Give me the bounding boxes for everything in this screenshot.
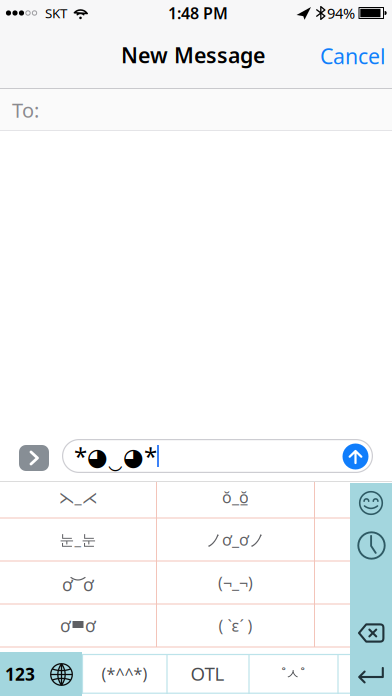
- staticText: ˚ㅅ˚: [281, 664, 304, 683]
- button[interactable]: (¬_¬): [160, 561, 310, 603]
- staticText: 1:48 PM: [168, 2, 228, 24]
- button[interactable]: ⋋_⋌: [3, 476, 153, 518]
- staticText: ơ: [62, 573, 73, 596]
- button[interactable]: ( `ε´ ): [160, 604, 310, 646]
- staticText: 123: [5, 662, 35, 685]
- button[interactable]: Recent: [356, 530, 386, 560]
- button[interactable]: OTL: [167, 654, 247, 692]
- button[interactable]: ơ: [3, 561, 153, 603]
- staticText: New Message: [121, 41, 265, 69]
- button[interactable]: Delete: [358, 623, 385, 643]
- staticText: ノơ_ơノ: [206, 529, 265, 550]
- button[interactable]: ơ: [3, 604, 153, 646]
- staticText: ơ: [60, 614, 71, 637]
- staticText: 눈_눈: [59, 530, 96, 549]
- button[interactable]: 눈_눈: [3, 518, 153, 560]
- button[interactable]: Send: [342, 443, 368, 469]
- staticText: ŏ_ŏ̲: [222, 486, 249, 508]
- button[interactable]: Show app drawer: [19, 445, 49, 471]
- staticText: 94%: [327, 3, 355, 23]
- button[interactable]: ˚ㅅ˚: [253, 654, 333, 692]
- button[interactable]: Next keyboard: [50, 663, 73, 686]
- staticText: (*^^*): [101, 663, 147, 684]
- button[interactable]: ŏ_ŏ̲: [160, 476, 310, 518]
- staticText: *◕‿◕*: [74, 440, 157, 472]
- button[interactable]: Return: [358, 667, 384, 684]
- staticText: ( `ε´ ): [218, 615, 252, 636]
- staticText: OTL: [190, 661, 224, 686]
- staticText: ơ: [83, 573, 94, 596]
- staticText: ⋋_⋌: [58, 486, 97, 508]
- button[interactable]: (*^^*): [84, 654, 164, 692]
- button[interactable]: Emoji: [357, 489, 385, 517]
- button[interactable]: 123: [1, 652, 39, 696]
- button[interactable]: ノơ_ơノ: [160, 518, 310, 560]
- staticText: ơ: [85, 614, 96, 637]
- button[interactable]: Cancel: [315, 39, 391, 73]
- staticText: SKT: [45, 4, 67, 22]
- staticText: Cancel: [320, 42, 386, 70]
- staticText: To:: [12, 97, 39, 123]
- staticText: (¬_¬): [218, 572, 253, 593]
